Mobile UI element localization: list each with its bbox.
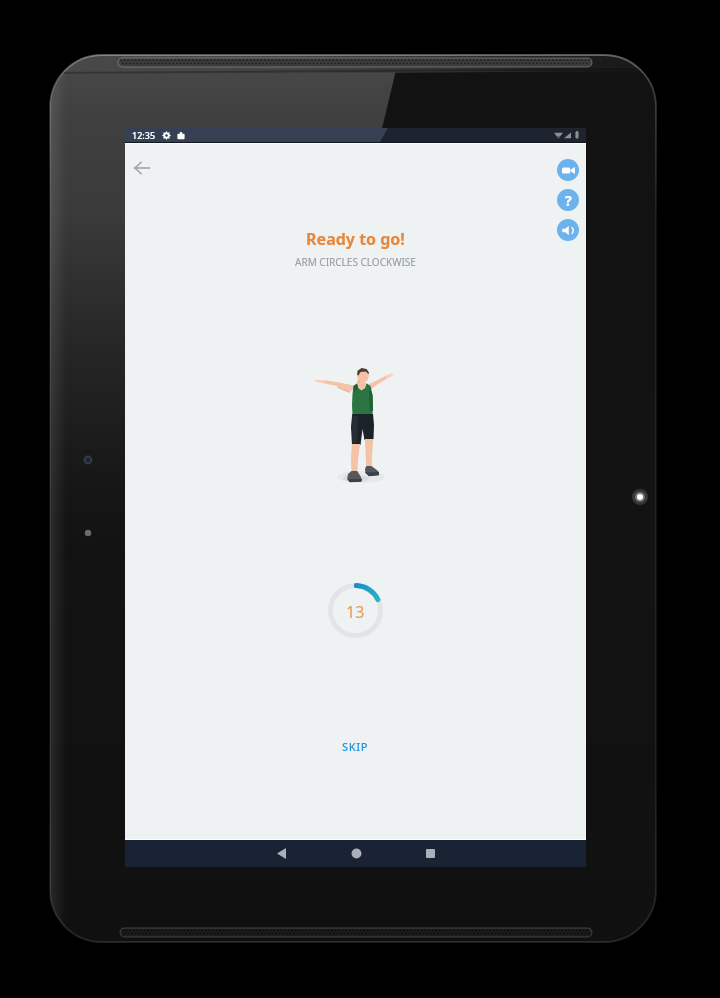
button[interactable]: SKIP	[322, 730, 389, 763]
button[interactable]: Home	[331, 840, 381, 867]
staticText: 13	[346, 601, 365, 623]
staticText: ARM CIRCLES CLOCKWISE	[295, 255, 416, 269]
staticText: SKIP	[342, 739, 369, 754]
button[interactable]: Sound	[557, 219, 579, 241]
staticText: Ready to go!	[306, 228, 405, 250]
staticText: ?	[565, 191, 572, 210]
button[interactable]: Back	[122, 148, 162, 188]
button[interactable]: Play video	[557, 159, 579, 181]
staticText: 12:35	[132, 129, 156, 141]
button[interactable]: Help	[557, 189, 579, 211]
button[interactable]: Recent apps	[405, 840, 455, 867]
button[interactable]: Back	[256, 840, 306, 867]
